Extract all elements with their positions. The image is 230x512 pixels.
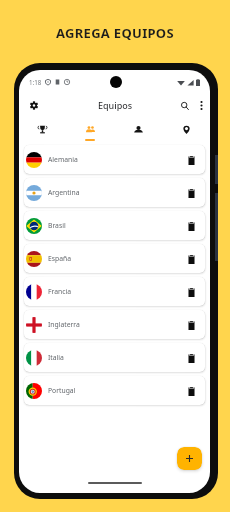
button[interactable]: Torneos: [19, 120, 66, 142]
button[interactable]: Portugal: [24, 376, 205, 405]
button[interactable]: Francia: [24, 277, 205, 306]
button[interactable]: Más opciones: [191, 95, 210, 116]
button[interactable]: Eliminar Inglaterra: [184, 318, 198, 332]
button[interactable]: Eliminar España: [184, 252, 198, 266]
staticText: Italia: [48, 353, 64, 362]
staticText: España: [48, 254, 72, 263]
button[interactable]: Ajustes: [23, 94, 45, 116]
button[interactable]: Alemania: [24, 145, 205, 174]
button[interactable]: Eliminar Francia: [184, 285, 198, 299]
button[interactable]: España: [24, 244, 205, 273]
button[interactable]: Buscar: [174, 95, 195, 116]
staticText: 1:18: [29, 78, 42, 86]
button[interactable]: Equipos: [66, 120, 114, 142]
staticText: Brasil: [48, 221, 66, 230]
button[interactable]: Brasil: [24, 211, 205, 240]
button[interactable]: Eliminar Portugal: [184, 384, 198, 398]
staticText: AGREGA EQUIPOS: [56, 24, 174, 42]
button[interactable]: Eliminar Brasil: [184, 219, 198, 233]
button[interactable]: Eliminar Argentina: [184, 186, 198, 200]
button[interactable]: Agregar equipo: [177, 447, 202, 470]
staticText: Argentina: [48, 188, 80, 197]
staticText: Francia: [48, 287, 72, 296]
staticText: Portugal: [48, 386, 76, 395]
button[interactable]: Eliminar Italia: [184, 351, 198, 365]
button[interactable]: Jugadores: [114, 120, 162, 142]
button[interactable]: Argentina: [24, 178, 205, 207]
button[interactable]: Eliminar Alemania: [184, 153, 198, 167]
staticText: Equipos: [98, 99, 133, 111]
button[interactable]: Sedes: [162, 120, 210, 142]
staticText: Alemania: [48, 155, 78, 164]
button[interactable]: Inglaterra: [24, 310, 205, 339]
button[interactable]: Italia: [24, 343, 205, 372]
staticText: Inglaterra: [48, 320, 80, 329]
